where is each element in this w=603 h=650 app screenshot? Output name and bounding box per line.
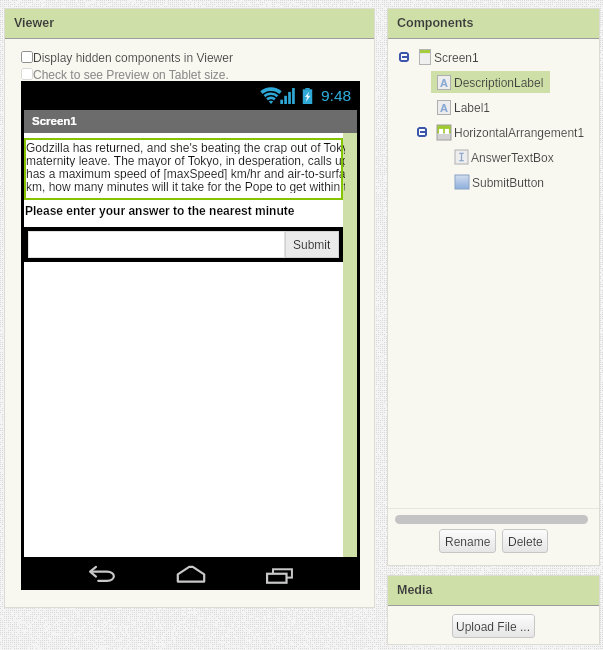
staticText: A [440,77,448,89]
staticText: Check to see Preview on Tablet size. [33,68,229,81]
staticText: Label1 [454,101,491,114]
staticText: Delete [508,535,543,548]
button[interactable]: Godzilla has returned, and she's beating… [24,138,343,200]
staticText: A [440,102,448,114]
staticText: Viewer [14,16,55,30]
button[interactable]: Delete [502,529,548,553]
staticText: Display hidden components in Viewer [33,51,233,64]
button[interactable]: A [387,69,600,94]
staticText: 9:48 [321,87,352,104]
button[interactable] [28,231,285,258]
staticText: Media [397,583,433,597]
staticText: has a maximum speed of [maxSpeed] km/hr … [26,167,345,180]
button[interactable]: Rename [439,529,496,553]
staticText: km, how many minutes will it take for th… [26,180,345,193]
button[interactable]: Upload File ... [452,614,535,638]
button[interactable]: SubmitButton [387,169,600,194]
button[interactable]: Display hidden components in Viewer [21,49,233,65]
staticText: HorizontalArrangement1 [454,126,585,139]
button[interactable]: Back [89,566,117,583]
staticText: maternity leave. The mayor of Tokyo, in … [26,154,345,167]
staticText: Submit [293,238,331,251]
button[interactable]: Check to see Preview on Tablet size. [21,66,229,82]
staticText: Screen1 [32,115,77,128]
button[interactable]: HorizontalArrangement1 [387,119,600,144]
staticText: Components [397,16,474,30]
button[interactable]: Submit [285,231,339,258]
staticText: Screen1 [434,51,479,64]
staticText: DescriptionLabel [454,76,544,89]
button[interactable]: AnswerTextBox [387,144,600,169]
staticText: Godzilla has returned, and she's beating… [26,141,345,154]
staticText: AnswerTextBox [471,151,554,164]
button[interactable]: Screen1 [387,44,600,69]
button[interactable]: Home [176,565,206,583]
staticText: SubmitButton [472,176,545,189]
staticText: Rename [445,535,491,548]
button[interactable]: A [387,94,600,119]
button[interactable]: Recent apps [266,568,293,584]
staticText: Please enter your answer to the nearest … [25,204,295,217]
staticText: Upload File ... [456,620,531,633]
